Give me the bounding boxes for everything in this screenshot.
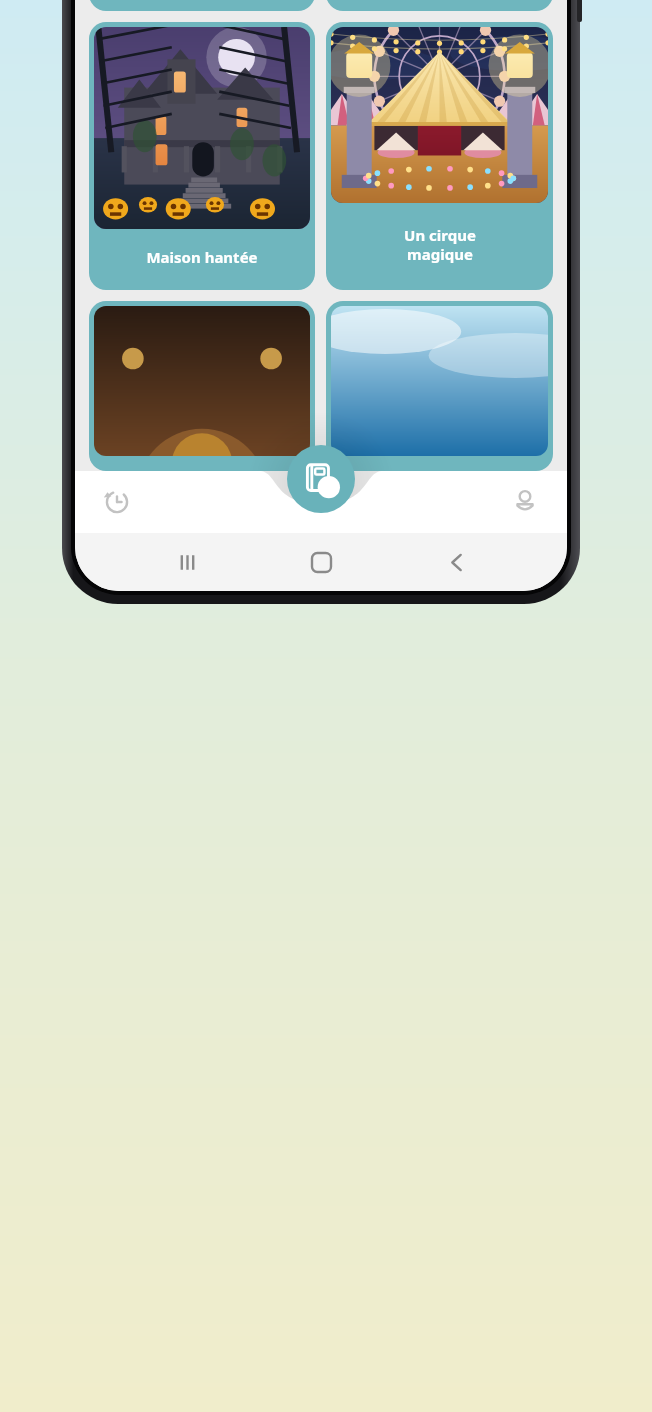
button[interactable]: Maison hantée	[89, 22, 315, 290]
staticText: Maison hantée	[146, 247, 258, 267]
button[interactable]	[89, 301, 315, 471]
button[interactable]: Vallée des dinosaures	[326, 0, 553, 11]
button[interactable]: Historique	[93, 478, 141, 526]
staticText: Un cirque magique	[404, 225, 476, 264]
button[interactable]: École	[89, 0, 315, 11]
button[interactable]	[326, 301, 553, 471]
button[interactable]: Retour	[433, 539, 479, 585]
button[interactable]: Un cirque magique	[326, 22, 553, 290]
button[interactable]: Créer une histoire	[287, 445, 355, 513]
button[interactable]: Accueil	[298, 539, 344, 585]
button[interactable]: Profil	[501, 478, 549, 526]
button[interactable]: Récents	[164, 539, 210, 585]
